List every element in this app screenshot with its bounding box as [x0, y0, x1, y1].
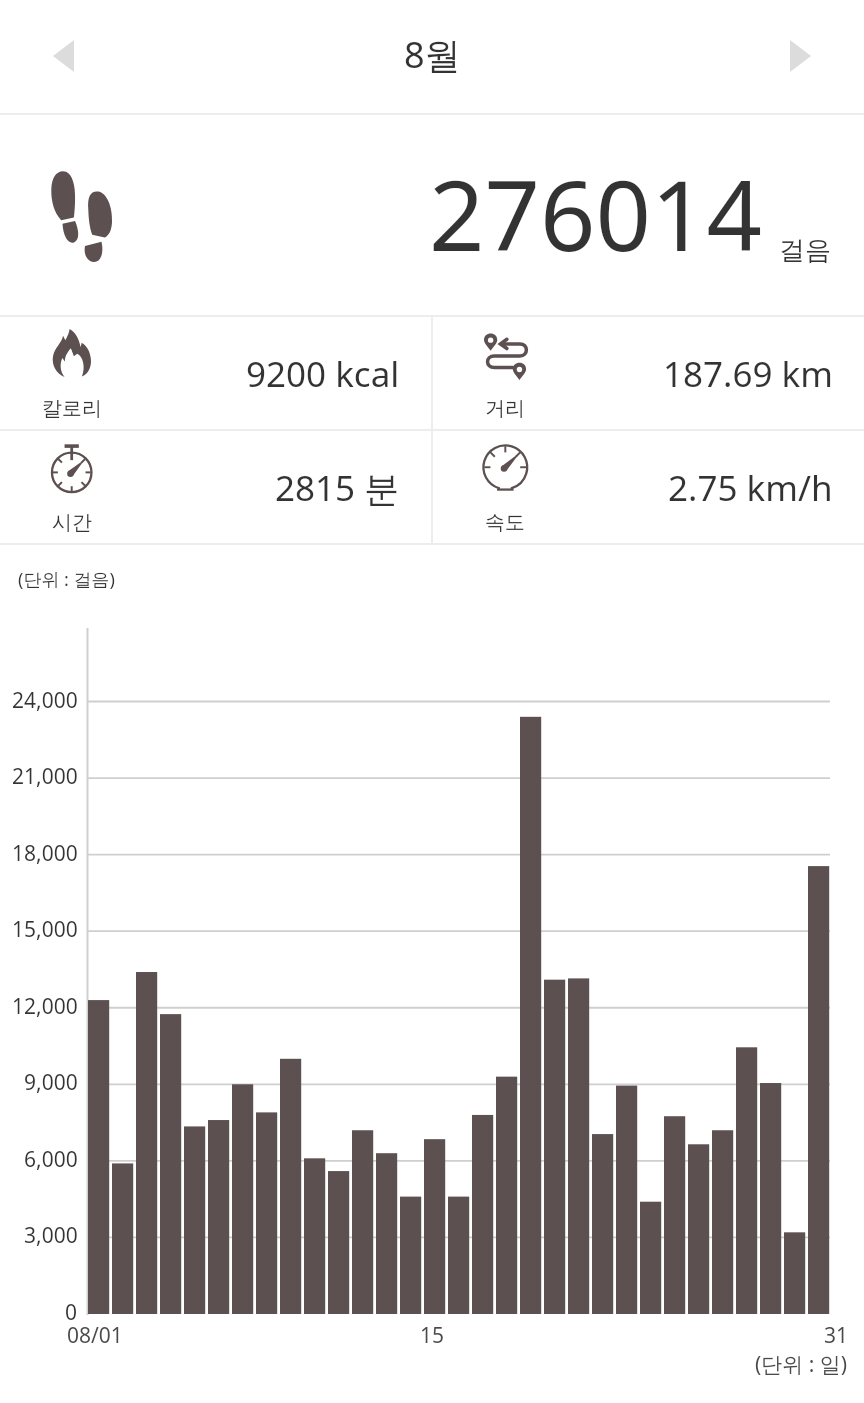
staticText: 31 — [824, 1321, 849, 1350]
staticText: 2.75 km/h — [668, 464, 833, 512]
staticText: 3,000 — [24, 1221, 78, 1250]
staticText: 9,000 — [24, 1068, 78, 1097]
staticText: 6,000 — [24, 1145, 78, 1174]
staticText: 9200 kcal — [246, 350, 400, 398]
staticText: 2815 분 — [275, 464, 400, 512]
staticText: 08/01 — [67, 1321, 123, 1350]
staticText: 18,000 — [12, 839, 78, 868]
staticText: 24,000 — [12, 686, 78, 715]
button[interactable]: Previous month — [0, 0, 126, 113]
button[interactable]: 시간 — [0, 431, 431, 543]
button[interactable]: Next month — [738, 0, 864, 113]
staticText: 12,000 — [12, 992, 78, 1021]
staticText: 속도 — [485, 510, 525, 535]
staticText: (단위 : 일) — [755, 1350, 848, 1379]
button[interactable]: 거리 — [433, 317, 864, 429]
staticText: 21,000 — [12, 762, 78, 791]
staticText: 시간 — [52, 510, 92, 535]
staticText: 276014 — [429, 147, 762, 279]
staticText: 187.69 km — [663, 350, 833, 398]
staticText: 15 — [420, 1321, 445, 1350]
staticText: 15,000 — [12, 915, 78, 944]
staticText: 0 — [65, 1298, 78, 1327]
staticText: 거리 — [485, 396, 525, 421]
staticText: 칼로리 — [42, 396, 102, 421]
button[interactable]: 칼로리 — [0, 317, 431, 429]
staticText: (단위 : 걸음) — [18, 567, 115, 592]
staticText: 8월 — [404, 30, 461, 79]
button[interactable]: 속도 — [433, 431, 864, 543]
staticText: 걸음 — [779, 234, 831, 267]
